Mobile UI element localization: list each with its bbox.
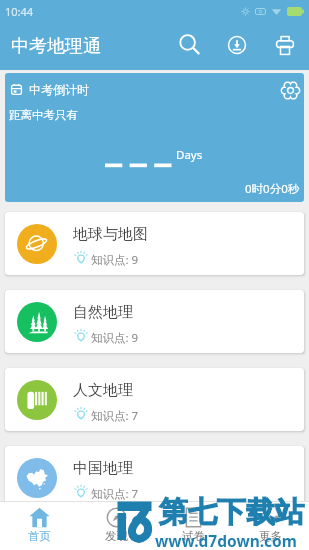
staticText: 中国地理 — [73, 459, 133, 478]
staticText: 知识点: 9 — [91, 252, 139, 268]
button[interactable]: 人文地理 — [5, 368, 304, 431]
staticText: 距离中考只有 — [9, 108, 78, 122]
staticText: 知识点: 7 — [91, 408, 139, 424]
button[interactable]: 发现 — [78, 502, 155, 550]
button[interactable]: Download — [219, 27, 254, 62]
staticText: 中考倒计时 — [29, 82, 89, 97]
staticText: Days — [176, 147, 203, 163]
staticText: 人文地理 — [73, 381, 133, 400]
button[interactable]: 中国地理 — [5, 446, 304, 509]
button[interactable]: 试卷 — [155, 502, 232, 550]
staticText: 试卷 — [182, 529, 205, 543]
staticText: 自然地理 — [73, 303, 133, 322]
button[interactable]: Settings — [274, 74, 304, 106]
staticText: 发现 — [105, 529, 128, 543]
staticText: 地球与地图 — [73, 225, 148, 244]
button[interactable]: 中考倒计时 — [5, 73, 304, 202]
staticText: 第七下载站 — [159, 494, 304, 531]
button[interactable]: 首页 — [0, 502, 78, 550]
button[interactable]: Print — [267, 28, 302, 63]
button[interactable]: 更多 — [232, 502, 309, 550]
button[interactable]: 地球与地图 — [5, 212, 304, 275]
staticText: 10:44 — [5, 4, 34, 19]
button[interactable]: 自然地理 — [5, 290, 304, 353]
staticText: 更多 — [259, 529, 282, 543]
staticText: 中考地理通 — [11, 35, 101, 58]
staticText: 知识点: 9 — [91, 330, 139, 346]
staticText: 0时0分0秒 — [245, 181, 300, 197]
staticText: www.d7down.com — [155, 530, 297, 550]
button[interactable]: Search — [172, 27, 207, 62]
staticText: 首页 — [28, 529, 51, 543]
staticText: 知识点: 7 — [91, 486, 139, 502]
